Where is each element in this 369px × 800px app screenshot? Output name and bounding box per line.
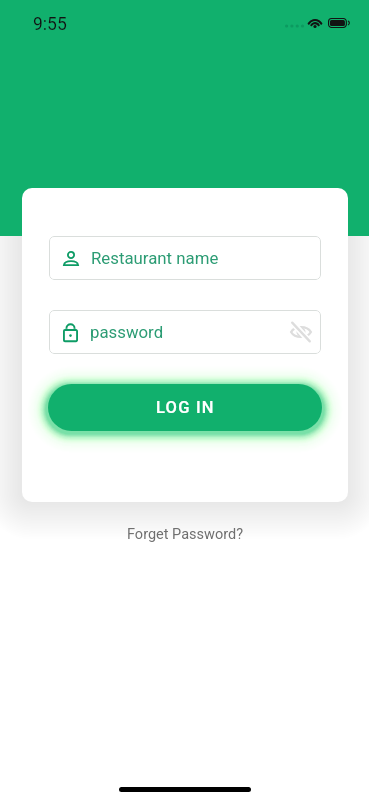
staticText: password: [90, 322, 164, 342]
button[interactable]: Forget Password?: [119, 523, 251, 546]
staticText: LOG IN: [156, 398, 215, 417]
button[interactable]: Show password: [287, 318, 315, 346]
staticText: 9:55: [33, 14, 67, 35]
button[interactable]: Restaurant name: [49, 236, 321, 280]
staticText: Forget Password?: [127, 526, 243, 543]
button[interactable]: password: [49, 310, 321, 354]
staticText: Restaurant name: [91, 248, 219, 268]
button[interactable]: LOG IN: [48, 384, 322, 431]
